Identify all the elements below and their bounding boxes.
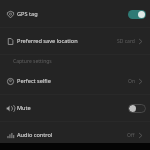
staticText: GPS tag: [17, 10, 38, 18]
button[interactable]: Mute toggle off: [128, 104, 146, 113]
staticText: Perfect selfie: [17, 77, 51, 85]
staticText: Off: [127, 132, 135, 139]
staticText: Audio control: [17, 131, 53, 139]
button[interactable]: Mute: [0, 95, 150, 121]
button[interactable]: GPS tag: [0, 1, 150, 27]
staticText: Preferred save location: [17, 37, 78, 45]
staticText: SD card: [117, 38, 135, 45]
button[interactable]: GPS tag toggle on: [128, 10, 146, 19]
staticText: Capture settings: [13, 58, 52, 65]
button[interactable]: Perfect selfie: [0, 68, 150, 94]
staticText: On: [128, 78, 135, 85]
staticText: Mute: [17, 104, 31, 112]
button[interactable]: Audio control: [0, 122, 150, 148]
button[interactable]: Preferred save location: [0, 28, 150, 54]
